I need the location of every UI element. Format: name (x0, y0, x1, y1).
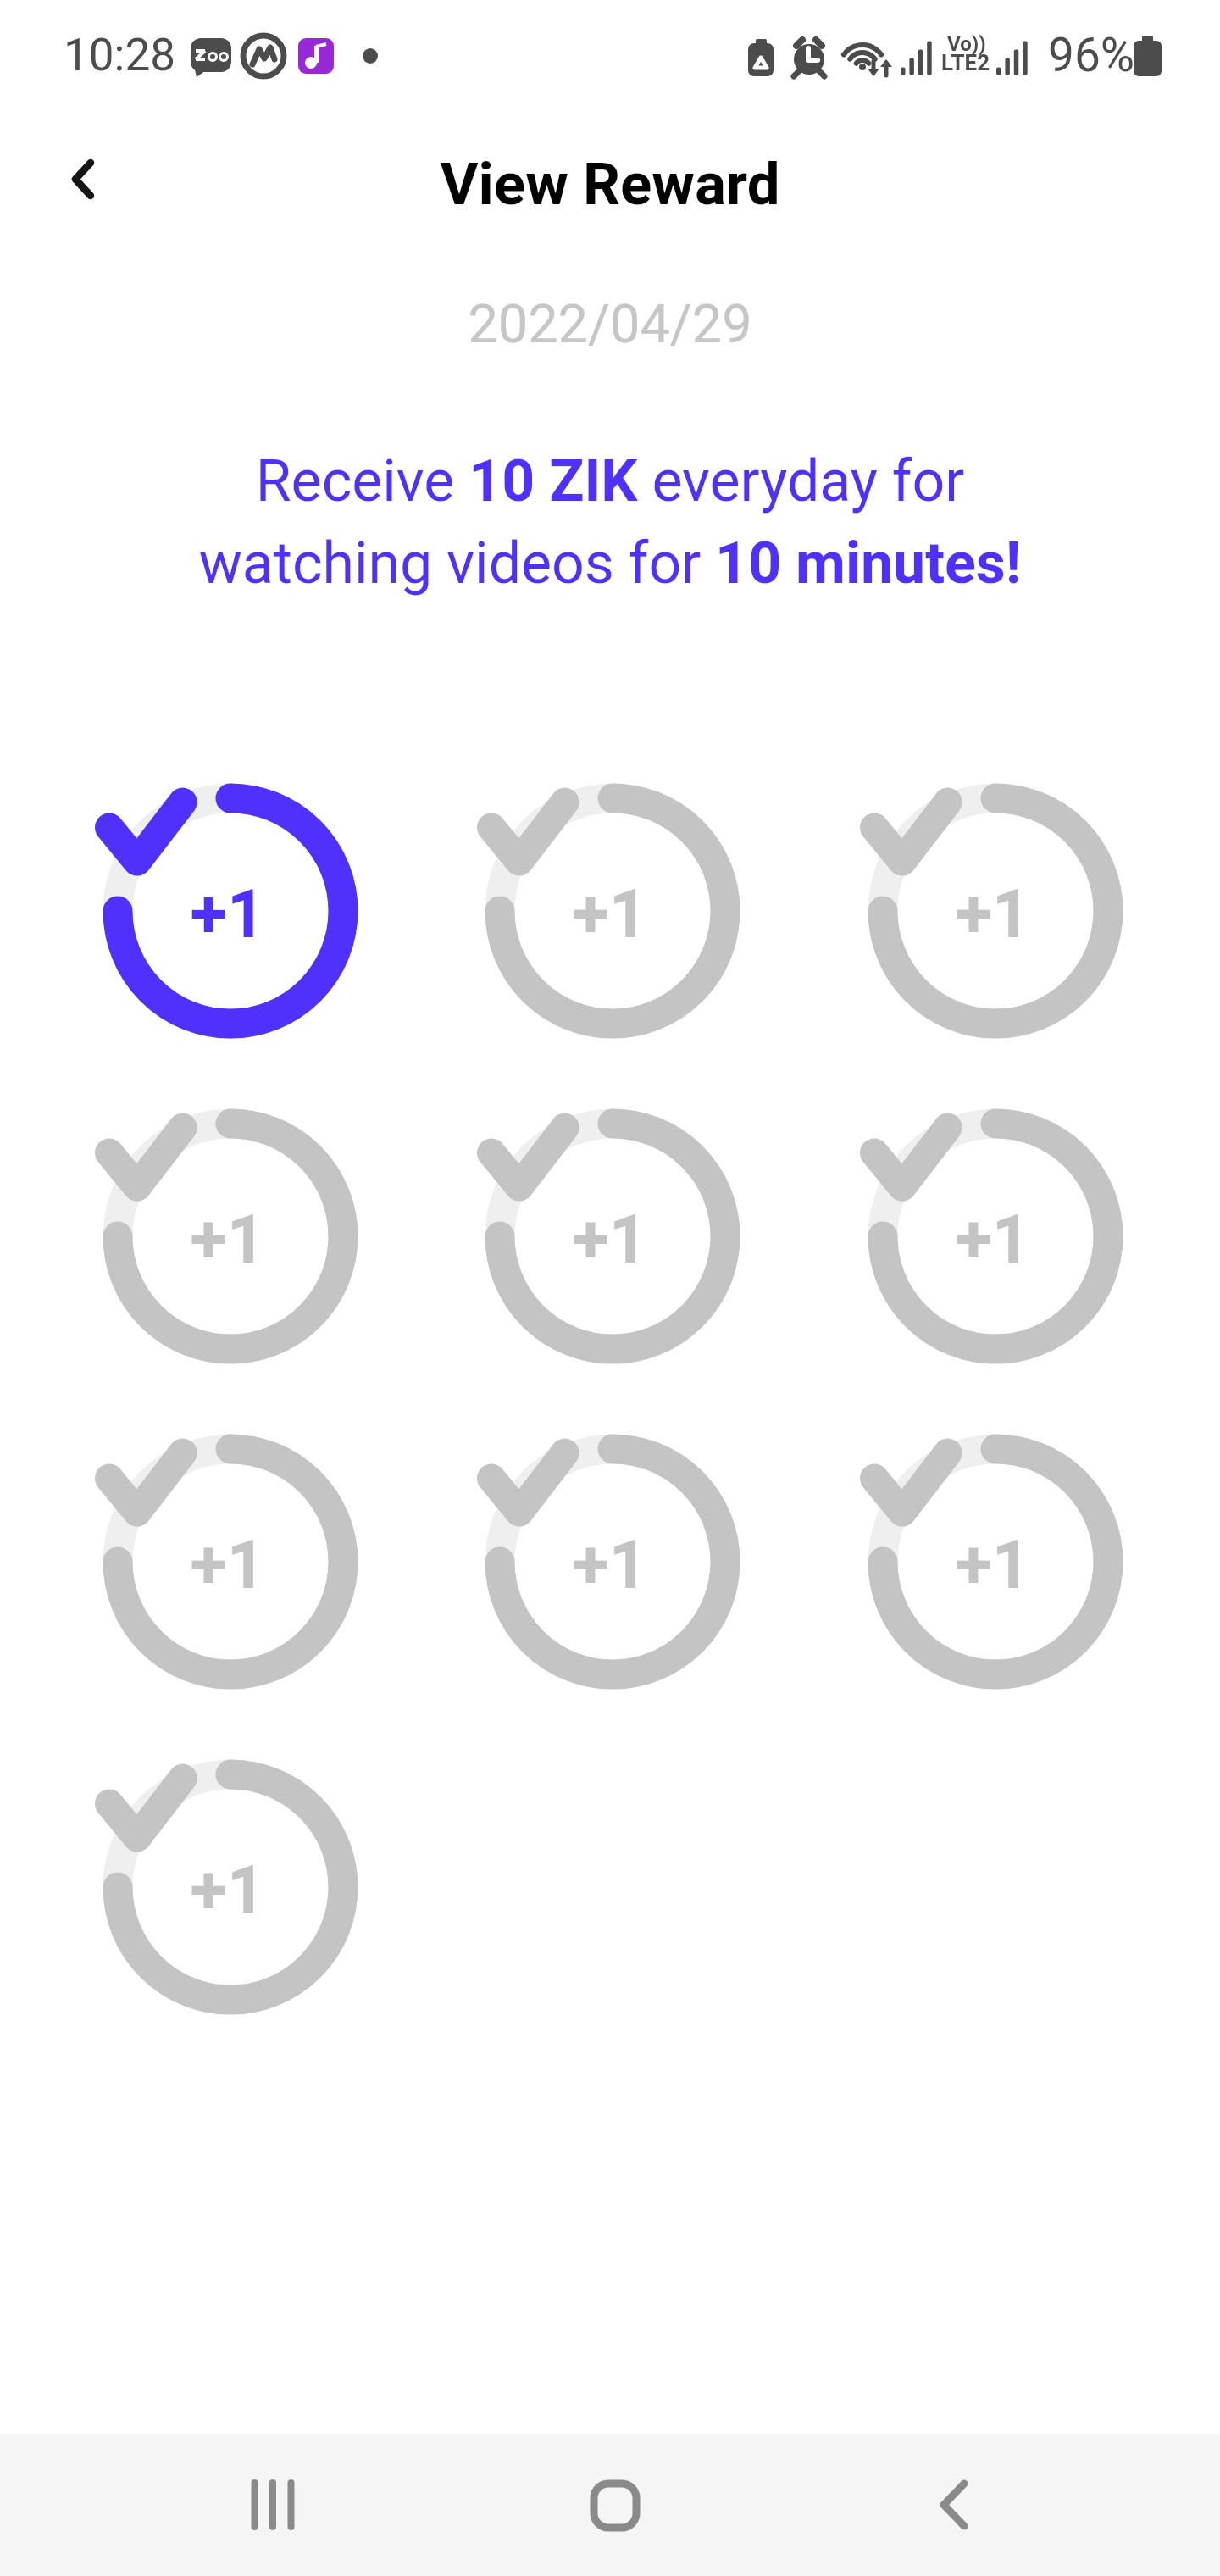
staticText: Receive 10 ZIK everyday for watching vid… (161, 447, 1059, 597)
button[interactable]: Reward +1 (864, 1105, 1127, 1368)
staticText: 10:28 (64, 29, 175, 81)
staticText: 96% (1048, 28, 1135, 82)
button[interactable]: Home (546, 2437, 681, 2573)
button[interactable]: Back (42, 136, 126, 221)
button[interactable]: Reward +1 (99, 1105, 362, 1368)
button[interactable]: Reward +1 (99, 780, 362, 1042)
button[interactable]: Reward +1 (864, 1430, 1127, 1693)
staticText: LTE2 (941, 50, 990, 75)
button[interactable]: Reward +1 (99, 1756, 362, 2018)
button[interactable]: Reward +1 (864, 780, 1127, 1042)
button[interactable]: Back (886, 2437, 1022, 2573)
staticText: Vo)) (947, 32, 986, 56)
staticText: View Reward (0, 150, 1220, 219)
button[interactable]: Reward +1 (481, 1105, 744, 1368)
button[interactable]: Reward +1 (481, 1430, 744, 1693)
staticText: 2022/04/29 (0, 293, 1220, 356)
button[interactable]: Reward +1 (99, 1430, 362, 1693)
button[interactable]: Reward +1 (481, 780, 744, 1042)
button[interactable]: Recent apps (205, 2437, 341, 2573)
